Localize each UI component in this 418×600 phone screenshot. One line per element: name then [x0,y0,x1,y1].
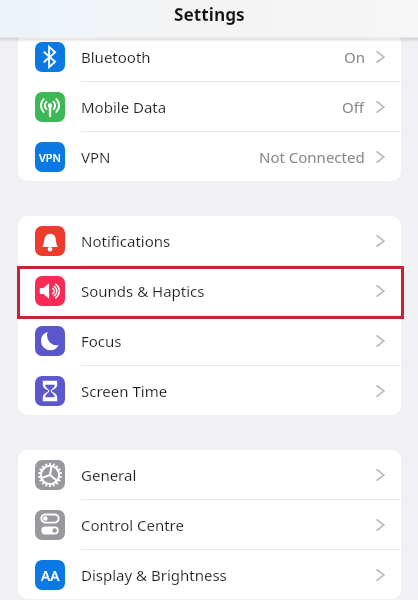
staticText: Settings [174,3,245,26]
staticText: Sounds & Haptics [81,281,205,301]
button[interactable]: General [18,450,401,499]
staticText: VPN [81,147,111,167]
button[interactable]: Mobile Data [18,82,401,131]
staticText: On [344,47,365,67]
staticText: Notifications [81,231,171,251]
staticText: Bluetooth [81,47,151,67]
button[interactable]: Focus [18,316,401,365]
button[interactable]: Bluetooth [18,32,401,81]
staticText: Control Centre [81,515,184,535]
button[interactable]: Control Centre [18,500,401,549]
staticText: Screen Time [81,381,168,401]
staticText: Not Connected [259,147,365,167]
staticText: VPN [39,150,62,165]
button[interactable]: Notifications [18,216,401,265]
button[interactable]: Sounds & Haptics [18,266,401,315]
button[interactable]: AA [18,550,401,599]
staticText: Mobile Data [81,97,167,117]
staticText: Off [342,97,365,117]
staticText: General [81,465,137,485]
button[interactable]: Screen Time [18,366,401,415]
staticText: AA [41,566,60,585]
button[interactable]: VPN [18,132,401,181]
staticText: Focus [81,331,122,351]
staticText: Display & Brightness [81,565,227,585]
